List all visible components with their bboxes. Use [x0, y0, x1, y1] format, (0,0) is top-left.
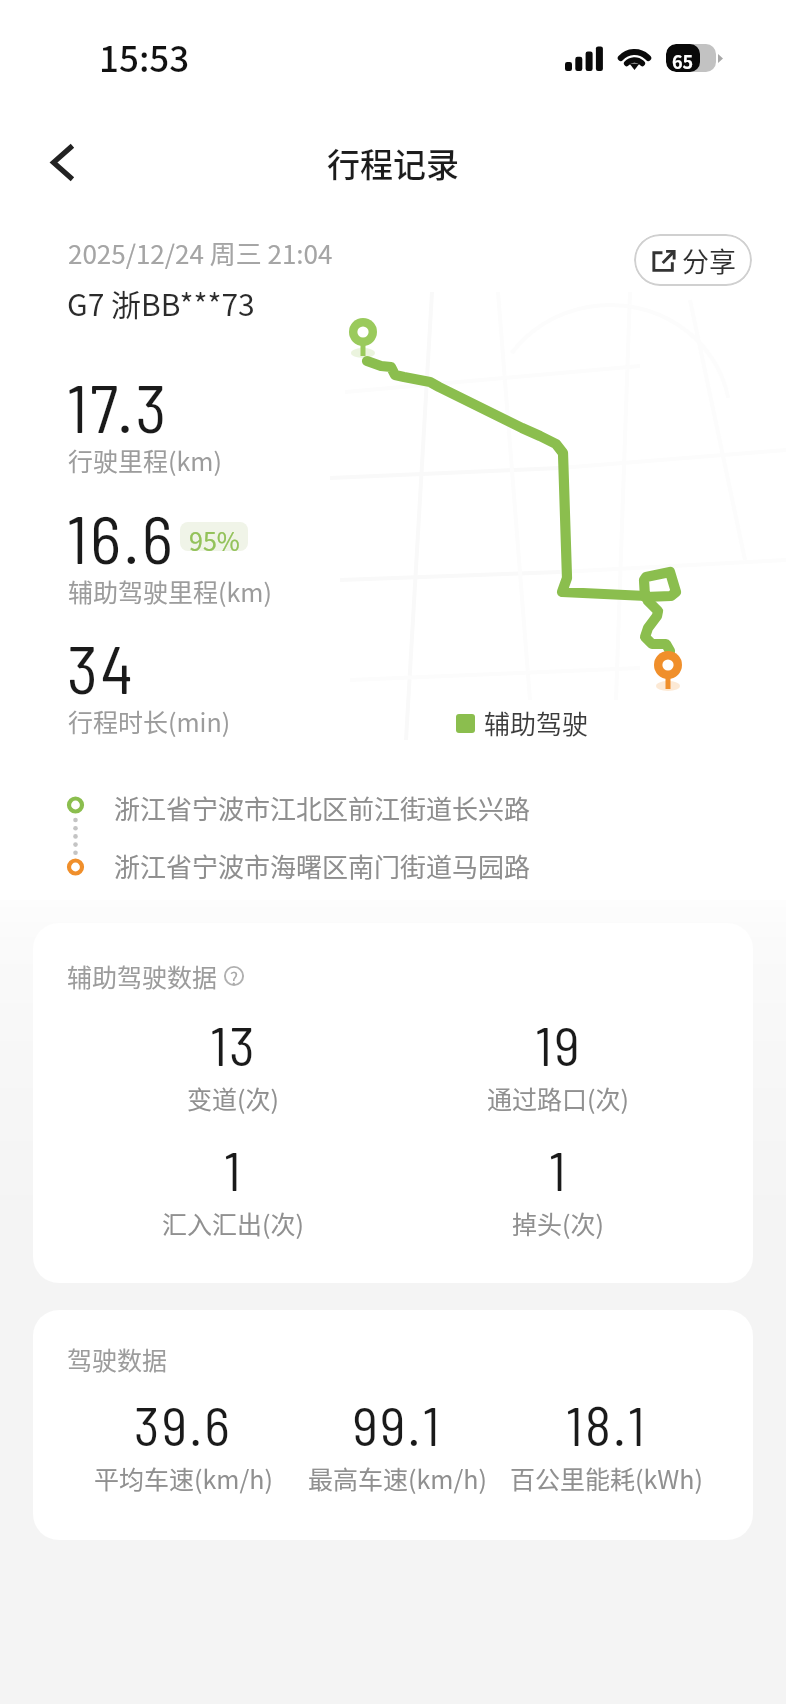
staticText: 15:53	[99, 31, 190, 82]
staticText: 百公里能耗(kWh)	[510, 1460, 703, 1496]
staticText: 95%	[189, 522, 240, 551]
staticText: 19	[535, 1011, 582, 1077]
button[interactable]: 分享	[634, 234, 752, 286]
staticText: 65	[672, 48, 694, 72]
staticText: 驾驶数据	[67, 1341, 168, 1377]
staticText: 34	[67, 627, 136, 707]
staticText: 变道(次)	[187, 1080, 279, 1116]
button[interactable]: Back	[29, 129, 95, 195]
staticText: 浙江省宁波市江北区前江街道长兴路	[114, 789, 531, 827]
staticText: 1	[224, 1136, 243, 1202]
staticText: 通过路口(次)	[487, 1080, 629, 1116]
staticText: 39.6	[134, 1391, 232, 1457]
staticText: 17.3	[67, 366, 170, 446]
staticText: 行驶里程(km)	[68, 442, 222, 478]
button[interactable]: About assisted driving data	[33, 923, 753, 1283]
button[interactable]: Trip route map	[336, 300, 786, 696]
staticText: G7 浙BB***73	[67, 281, 255, 324]
button[interactable]: 浙江省宁波市海曙区南门街道马园路	[100, 840, 660, 884]
staticText: 行程时长(min)	[68, 703, 231, 739]
staticText: 1	[549, 1136, 568, 1202]
staticText: 分享	[682, 241, 736, 280]
staticText: 18.1	[566, 1391, 647, 1457]
staticText: 13	[210, 1011, 257, 1077]
staticText: 辅助驾驶	[484, 704, 589, 742]
staticText: 掉头(次)	[512, 1205, 604, 1241]
staticText: 辅助驾驶里程(km)	[68, 573, 272, 609]
staticText: 辅助驾驶数据	[67, 958, 218, 994]
button[interactable]: About assisted driving data	[59, 958, 252, 994]
staticText: 平均车速(km/h)	[94, 1460, 273, 1496]
staticText: 行程记录	[327, 139, 459, 187]
button[interactable]: 驾驶数据	[33, 1310, 753, 1540]
staticText: ?	[230, 965, 239, 985]
staticText: 汇入汇出(次)	[162, 1205, 304, 1241]
staticText: 浙江省宁波市海曙区南门街道马园路	[114, 847, 531, 885]
staticText: 最高车速(km/h)	[308, 1460, 487, 1496]
button[interactable]: 浙江省宁波市江北区前江街道长兴路	[100, 782, 660, 826]
staticText: 99.1	[352, 1391, 442, 1457]
staticText: 2025/12/24 周三 21:04	[68, 234, 333, 272]
staticText: 16.6	[67, 497, 176, 577]
